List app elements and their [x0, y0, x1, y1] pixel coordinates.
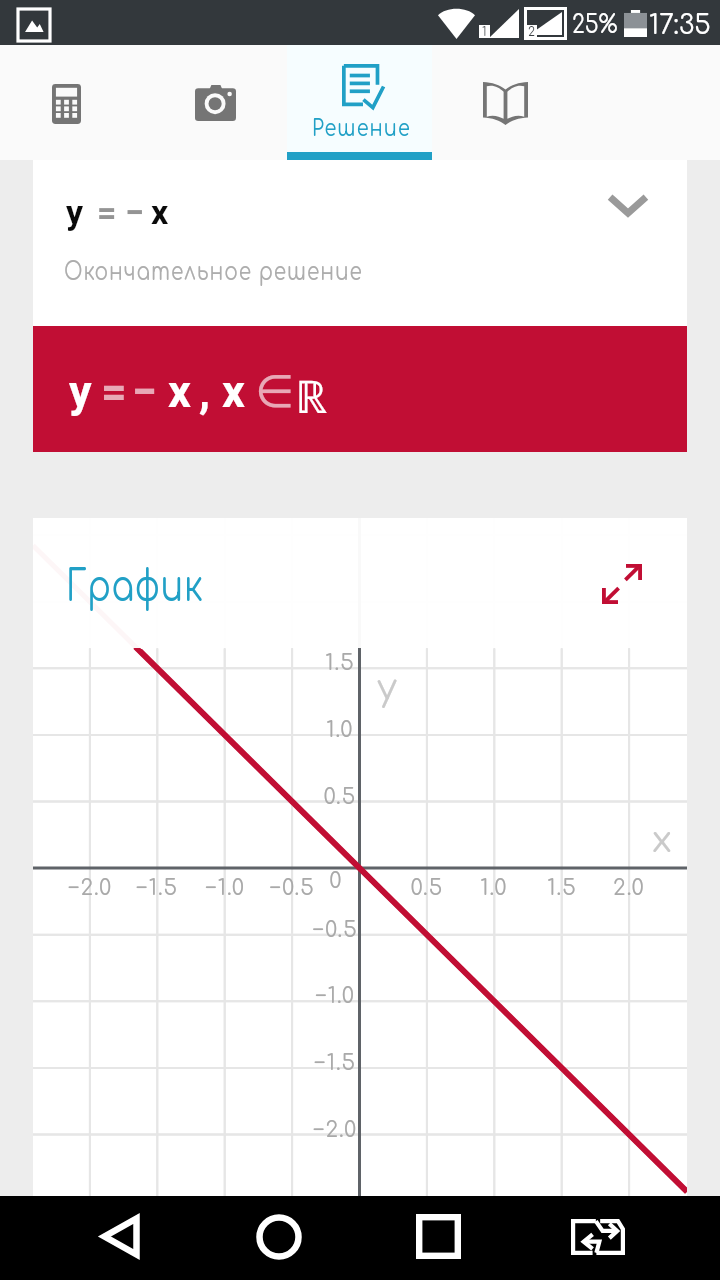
staticText: 1.5 [280, 651, 400, 675]
staticText: − [125, 192, 144, 232]
staticText: 1.5 [502, 876, 622, 900]
staticText: −1.5 [275, 1051, 395, 1075]
staticText: 0 [276, 869, 396, 893]
staticText: 25% [572, 11, 618, 39]
staticText: ℝ [295, 365, 328, 426]
staticText: , [199, 365, 211, 418]
button[interactable]: Rotate screen [540, 1196, 700, 1280]
staticText: 2.0 [569, 876, 687, 900]
button[interactable]: Решение [287, 45, 432, 160]
staticText: = [101, 365, 127, 418]
staticText: −0.5 [275, 918, 395, 942]
staticText: x [652, 820, 672, 860]
staticText: 0.5 [280, 785, 400, 809]
staticText: −1.0 [165, 876, 285, 900]
button[interactable]: Book [432, 45, 577, 160]
staticText: 2 [528, 25, 535, 38]
staticText: −1.5 [97, 876, 217, 900]
staticText: −1.0 [275, 984, 395, 1008]
button[interactable]: Recent apps [380, 1196, 540, 1280]
staticText: ∈ [255, 365, 295, 417]
staticText: x [168, 365, 191, 418]
staticText: x [151, 192, 169, 232]
button[interactable]: Calculator [0, 45, 142, 160]
button[interactable]: Solution tab [287, 45, 432, 160]
staticText: 1 [482, 25, 487, 38]
button[interactable]: Expand step [611, 195, 645, 217]
button[interactable]: Camera [142, 45, 287, 160]
staticText: −0.5 [232, 876, 352, 900]
button[interactable]: Expand graph [602, 564, 642, 604]
staticText: График [66, 562, 204, 611]
staticText: − [132, 365, 158, 418]
staticText: 1.0 [280, 718, 400, 742]
button[interactable]: Home [240, 1196, 400, 1280]
staticText: −2.0 [275, 1118, 395, 1142]
staticText: y [377, 668, 397, 708]
staticText: y [69, 365, 92, 418]
staticText: 1.0 [434, 876, 554, 900]
staticText: = [97, 192, 117, 232]
staticText: y [66, 192, 84, 232]
staticText: 17:35 [649, 10, 711, 40]
staticText: x [222, 365, 245, 418]
staticText: −2.0 [33, 876, 150, 900]
button[interactable]: Back [80, 1196, 240, 1280]
staticText: Окончательное решение [64, 258, 363, 285]
button[interactable]: y [33, 160, 687, 452]
staticText: Решение [312, 115, 411, 141]
other: Screenshot [18, 9, 50, 41]
staticText: 0.5 [367, 876, 487, 900]
